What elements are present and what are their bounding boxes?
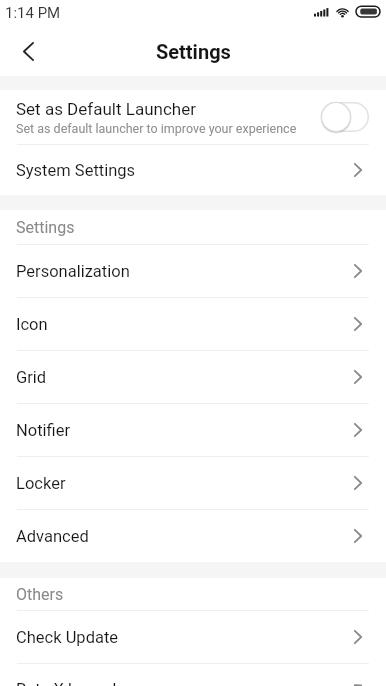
- button[interactable]: Check Update: [0, 611, 386, 663]
- staticText: Rate X Launcher: [16, 680, 136, 686]
- button[interactable]: Advanced: [0, 510, 386, 562]
- button[interactable]: Personalization: [0, 245, 386, 297]
- staticText: Icon: [16, 315, 48, 334]
- button[interactable]: Locker: [0, 457, 386, 509]
- staticText: Set as Default Launcher: [16, 99, 196, 119]
- staticText: Grid: [16, 368, 47, 387]
- button[interactable]: Rate X Launcher: [0, 664, 386, 686]
- staticText: Settings: [156, 40, 231, 63]
- button[interactable]: Grid: [0, 351, 386, 403]
- staticText: Personalization: [16, 262, 130, 281]
- staticText: 1:14 PM: [5, 4, 61, 22]
- button[interactable]: Set as Default Launcher: [0, 90, 386, 144]
- button[interactable]: Notifier: [0, 404, 386, 456]
- button[interactable]: Icon: [0, 298, 386, 350]
- staticText: Check Update: [16, 628, 119, 647]
- button[interactable]: [14, 37, 42, 65]
- staticText: Settings: [16, 218, 75, 237]
- staticText: Set as default launcher to improve your …: [16, 121, 297, 136]
- staticText: Notifier: [16, 421, 71, 440]
- staticText: Advanced: [16, 527, 89, 546]
- button[interactable]: System Settings: [0, 145, 386, 195]
- staticText: Others: [16, 585, 64, 604]
- staticText: Locker: [16, 474, 66, 493]
- staticText: System Settings: [16, 161, 136, 180]
